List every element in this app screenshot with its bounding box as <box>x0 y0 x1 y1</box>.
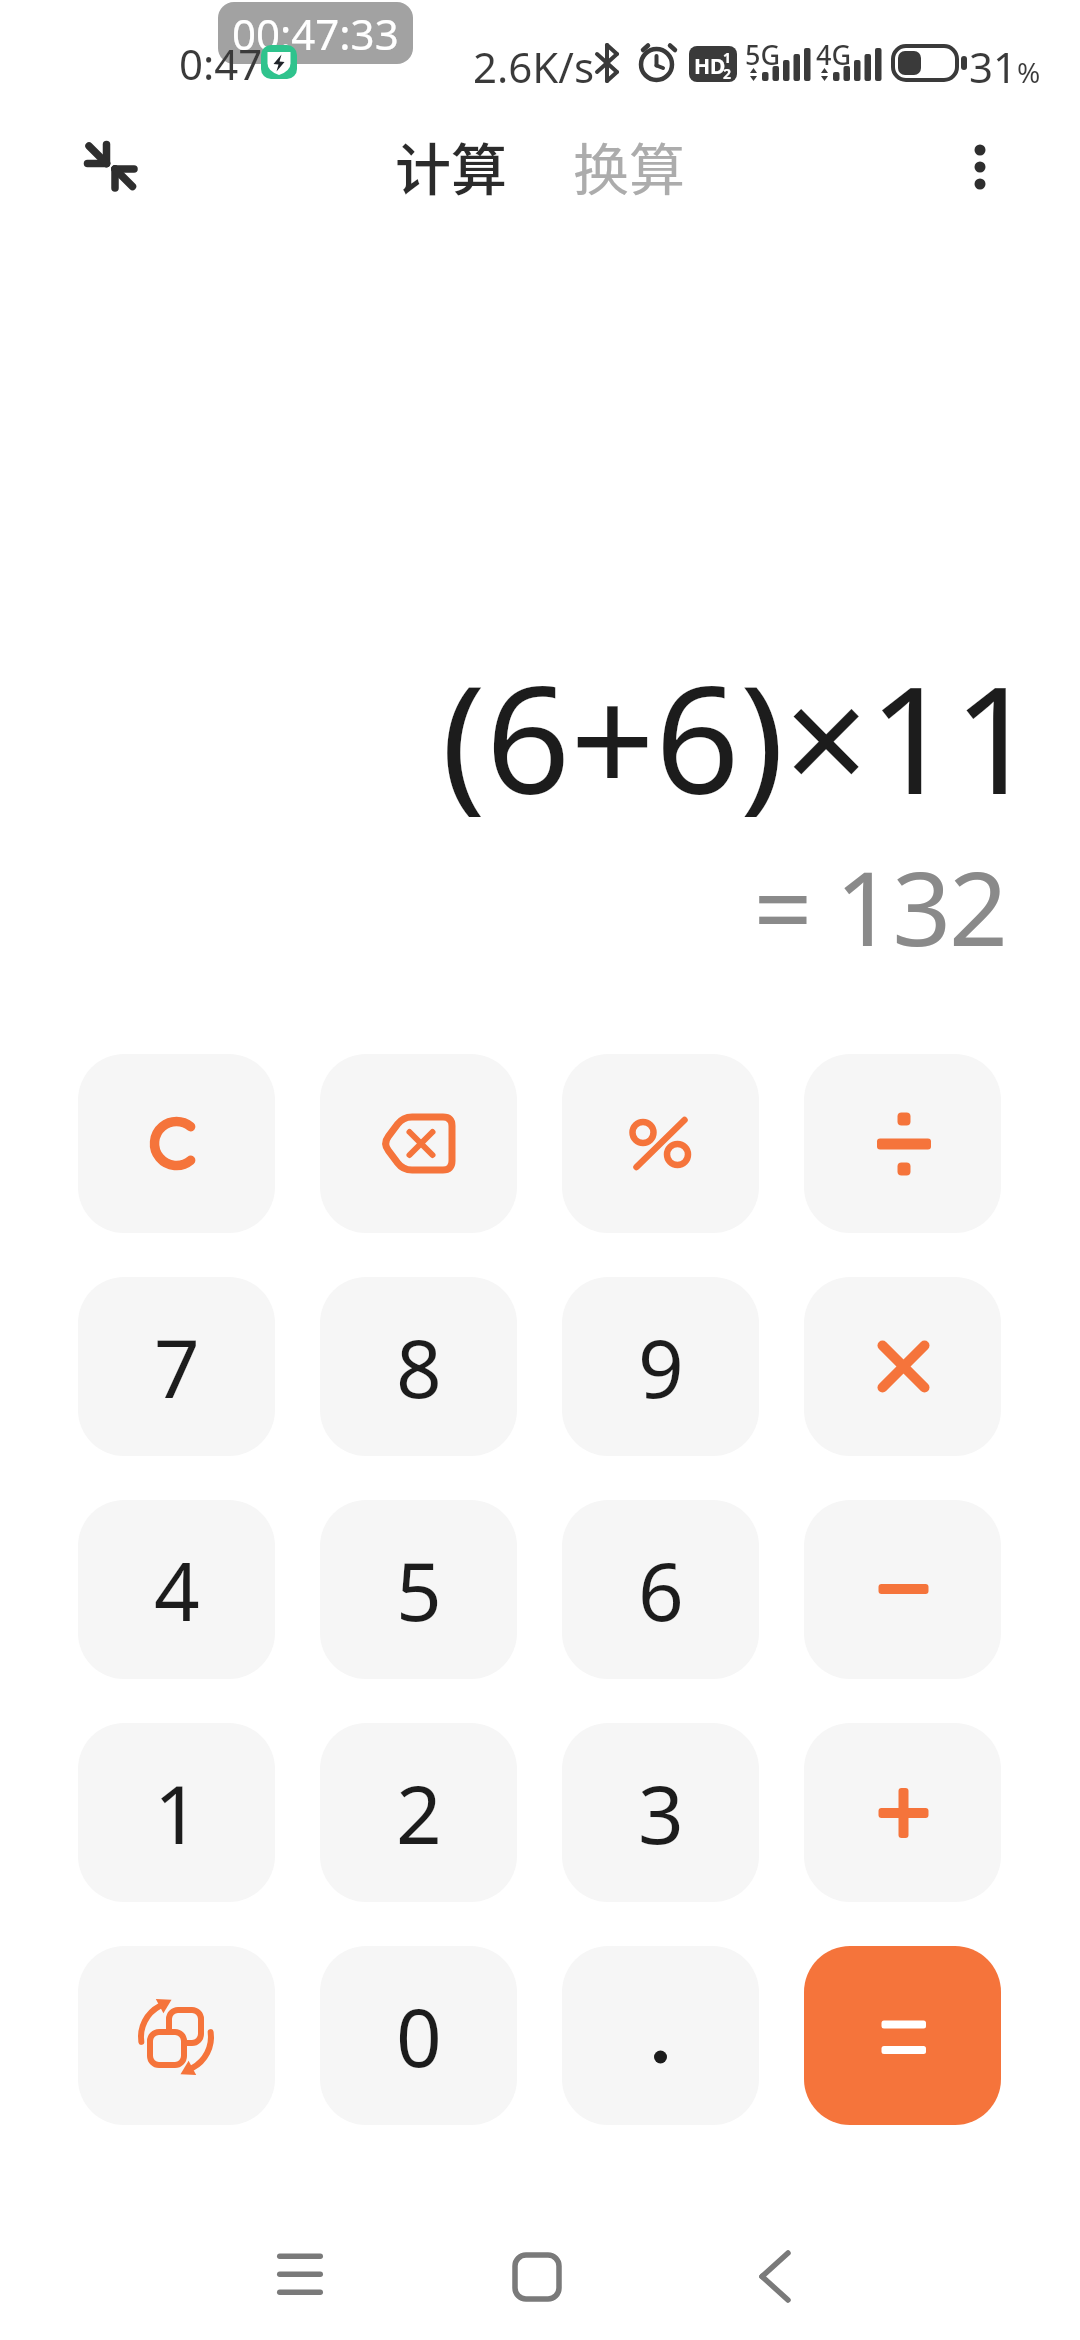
staticText: 0:47 <box>179 35 263 92</box>
staticText: 5G <box>745 36 781 73</box>
staticText: 计算 <box>395 125 507 206</box>
staticText: 6 <box>638 1535 684 1644</box>
staticText: 1 <box>723 48 732 67</box>
staticText: 31% <box>969 38 1041 95</box>
staticText: 2 <box>723 64 732 83</box>
staticText: 3 <box>638 1758 684 1867</box>
staticText: 9 <box>638 1312 684 1421</box>
staticText: 2 <box>396 1758 442 1867</box>
staticText: 2.6K/s <box>473 38 595 95</box>
staticText: 8 <box>396 1312 442 1421</box>
staticText: 1 <box>154 1758 200 1867</box>
staticText: 5 <box>396 1535 442 1644</box>
staticText: 0 <box>396 1981 442 2090</box>
staticText: (6+6)×11 <box>0 636 1038 838</box>
staticText: = 132 <box>0 836 1006 976</box>
staticText: HD <box>694 52 726 81</box>
staticText: 7 <box>154 1312 200 1421</box>
staticText: 4G <box>816 36 852 73</box>
staticText: 00:47:33 <box>232 5 399 62</box>
staticText: 4 <box>154 1535 200 1644</box>
staticText: 换算 <box>573 125 685 206</box>
